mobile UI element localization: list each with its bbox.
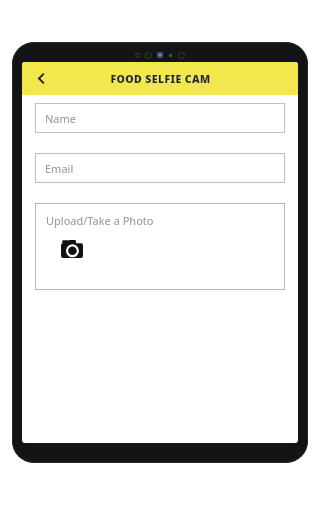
button[interactable]: Back [22, 62, 60, 95]
staticText: Upload/Take a Photo [46, 213, 154, 228]
staticText: FOOD SELFIE CAM [110, 72, 211, 86]
button[interactable]: Email [35, 153, 285, 183]
staticText: Email [45, 161, 74, 176]
staticText: Name [45, 111, 77, 126]
button[interactable]: Upload or take a photo [35, 203, 285, 290]
button[interactable]: Name [35, 103, 285, 133]
